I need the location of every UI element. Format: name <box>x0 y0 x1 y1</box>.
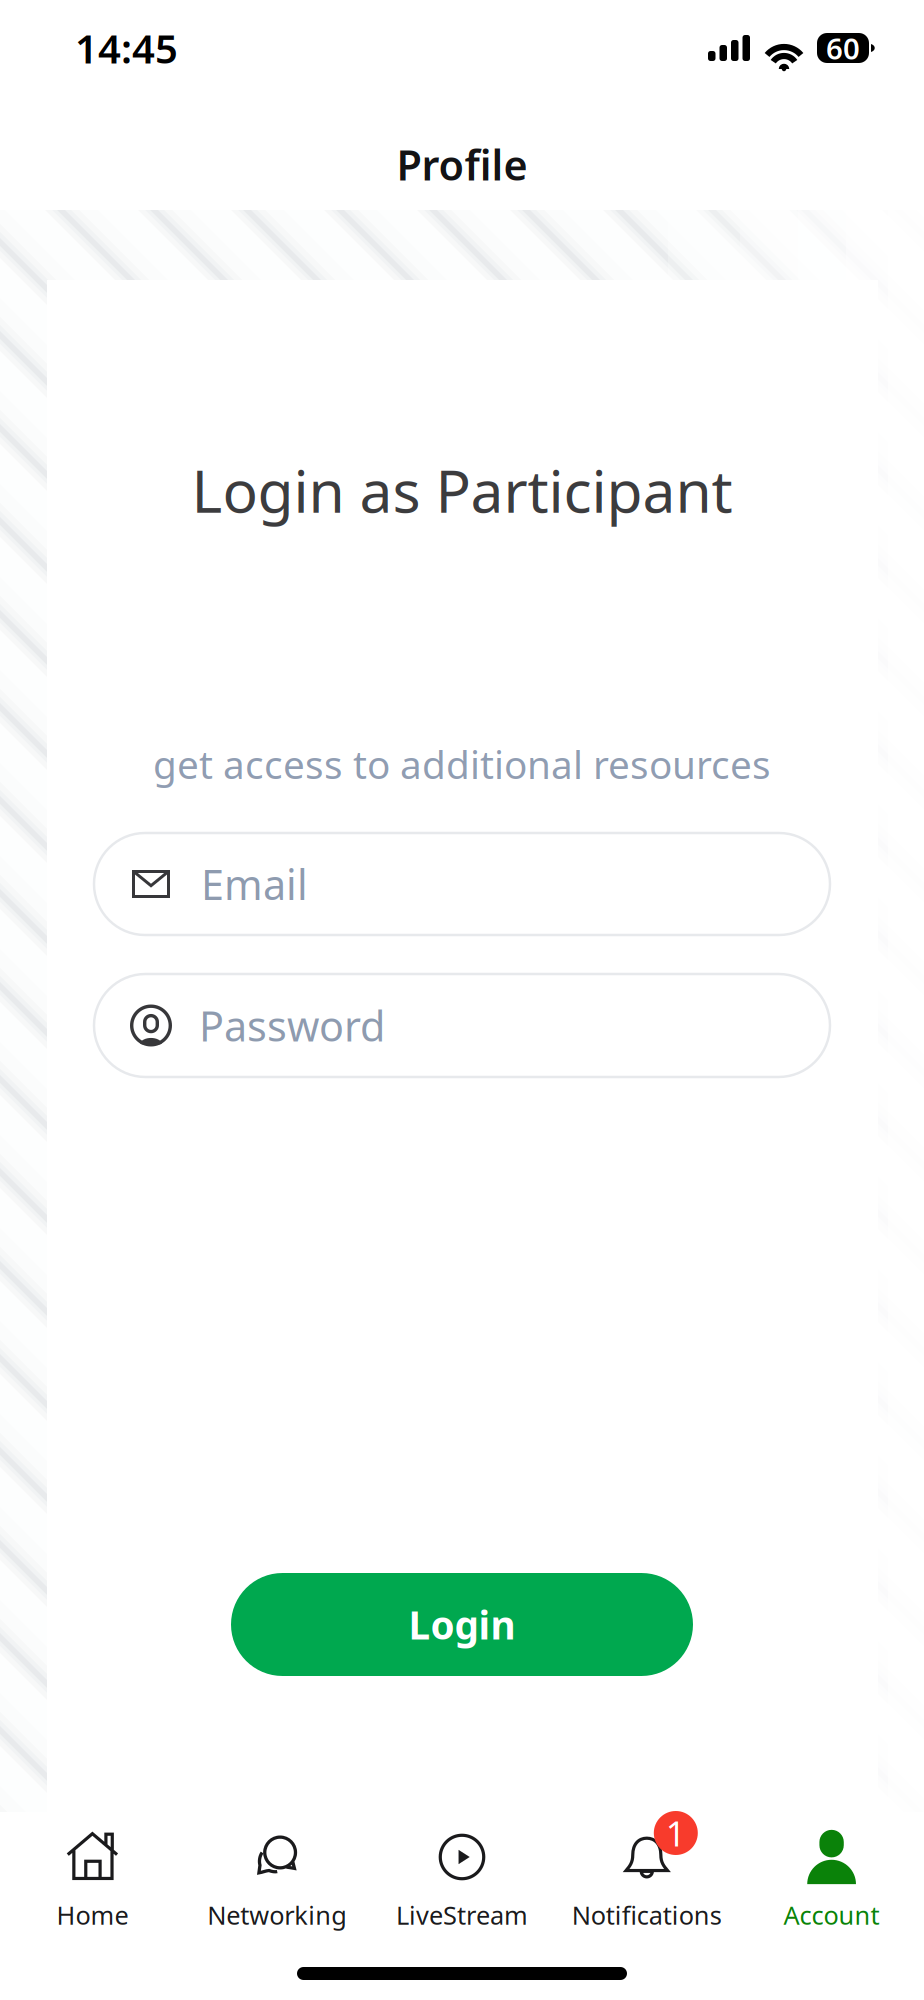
staticText: LiveStream <box>396 1898 528 1932</box>
button[interactable]: Password <box>94 974 830 1077</box>
button[interactable]: Home <box>0 1830 185 1956</box>
staticText: Login as Participant <box>191 451 732 529</box>
button[interactable]: LiveStream <box>370 1830 554 1956</box>
staticText: 60 <box>826 28 860 67</box>
staticText: Password <box>199 998 385 1053</box>
staticText: 1 <box>666 1810 686 1856</box>
staticText: 14:45 <box>75 21 178 74</box>
staticText: Notifications <box>572 1898 722 1932</box>
staticText: Login <box>408 1599 515 1650</box>
button[interactable]: 1 <box>554 1830 739 1956</box>
button[interactable]: Networking <box>185 1830 370 1956</box>
staticText: Profile <box>396 137 527 192</box>
staticText: Networking <box>207 1898 347 1932</box>
staticText: Account <box>784 1898 880 1932</box>
button[interactable]: Email <box>94 833 830 935</box>
button[interactable]: Account <box>739 1830 924 1956</box>
staticText: Email <box>201 857 308 911</box>
button[interactable]: Login <box>231 1573 693 1676</box>
staticText: Home <box>56 1898 128 1932</box>
staticText: get access to additional resources <box>153 738 771 790</box>
